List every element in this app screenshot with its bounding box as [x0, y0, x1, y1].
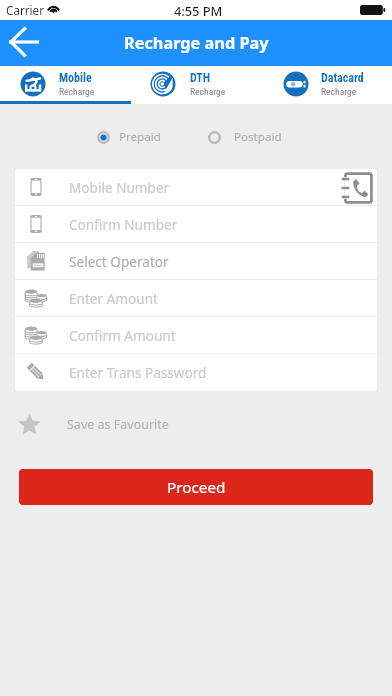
button[interactable]: Datacard	[275, 66, 385, 101]
button[interactable]: DTH	[142, 66, 254, 101]
staticText: Datacard	[321, 71, 364, 85]
button[interactable]: Back	[0, 20, 48, 66]
staticText: Confirm Number	[69, 215, 178, 234]
staticText: Enter Trans Password	[69, 363, 207, 382]
button[interactable]: Save as Favourite	[0, 412, 392, 436]
button[interactable]: Mobile	[12, 66, 123, 101]
button[interactable]: Prepaid	[97, 124, 177, 150]
staticText: Enter Amount	[69, 289, 159, 308]
staticText: Save as Favourite	[67, 416, 169, 433]
staticText: Select Operator	[69, 252, 169, 271]
staticText: Recharge	[321, 86, 357, 97]
button[interactable]: Enter Amount	[15, 280, 377, 317]
button[interactable]: Pick contact	[338, 169, 377, 206]
button[interactable]: Proceed	[19, 469, 373, 505]
staticText: Recharge and Pay	[124, 32, 269, 54]
staticText: Recharge	[59, 86, 95, 97]
staticText: Postpaid	[234, 129, 282, 145]
staticText: Carrier	[6, 2, 45, 18]
button[interactable]: Select Operator	[15, 243, 377, 280]
staticText: Recharge	[190, 86, 226, 97]
button[interactable]: Enter Trans Password	[15, 354, 377, 391]
staticText: Mobile	[59, 71, 92, 85]
button[interactable]: Confirm Amount	[15, 317, 377, 354]
button[interactable]: Mobile Number	[15, 169, 377, 206]
button[interactable]: Postpaid	[208, 124, 292, 150]
staticText: Proceed	[167, 477, 226, 498]
staticText: Confirm Amount	[69, 326, 176, 345]
staticText: DTH	[190, 71, 211, 85]
staticText: 4:55 PM	[174, 2, 223, 19]
staticText: Prepaid	[119, 129, 161, 145]
button[interactable]: Confirm Number	[15, 206, 377, 243]
staticText: Mobile Number	[69, 178, 170, 197]
